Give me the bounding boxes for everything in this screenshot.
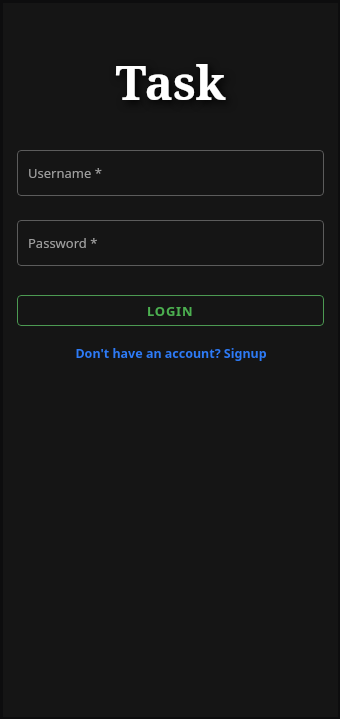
button[interactable]: Password * <box>17 220 324 266</box>
staticText: Username * <box>28 164 102 182</box>
staticText: Task Management <box>3 50 338 122</box>
staticText: LOGIN <box>147 302 194 320</box>
button[interactable]: LOGIN <box>17 295 324 326</box>
button[interactable]: Don't have an account? Signup <box>3 342 338 364</box>
staticText: Don't have an account? Signup <box>75 345 267 362</box>
button[interactable]: Username * <box>17 150 324 196</box>
staticText: Password * <box>28 234 98 252</box>
